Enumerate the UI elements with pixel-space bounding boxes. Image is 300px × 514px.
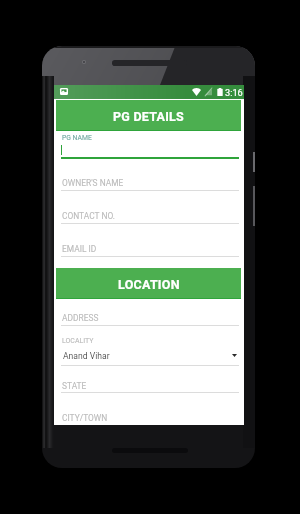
other: Screenshot captured [60, 88, 68, 95]
button[interactable]: PG DETAILS [56, 100, 241, 131]
button[interactable]: LOCALITY [61, 337, 239, 348]
staticText: EMAIL ID [62, 244, 97, 254]
button[interactable]: LOCATION [56, 268, 241, 299]
button[interactable]: CITY/TOWN [61, 413, 239, 424]
staticText: Anand Vihar [63, 351, 110, 361]
button[interactable]: EMAIL ID [61, 244, 239, 255]
staticText: STATE [62, 381, 87, 391]
button[interactable]: Anand Vihar [62, 351, 222, 363]
button[interactable]: PG NAME [61, 134, 239, 145]
staticText: LOCATION [118, 277, 180, 292]
staticText: PG DETAILS [113, 109, 184, 124]
staticText: OWNER'S NAME [62, 178, 124, 188]
staticText: ADDRESS [62, 313, 99, 323]
staticText: CONTACT NO. [62, 211, 116, 221]
other: Select locality [232, 354, 237, 357]
staticText: CITY/TOWN [62, 413, 108, 423]
button[interactable]: STATE [61, 381, 239, 392]
button[interactable]: CONTACT NO. [61, 211, 239, 222]
button[interactable]: OWNER'S NAME [61, 178, 239, 189]
button[interactable]: ADDRESS [61, 313, 239, 324]
staticText: LOCALITY [62, 337, 94, 345]
staticText: PG NAME [62, 134, 92, 142]
staticText: 3:16 [225, 87, 243, 98]
